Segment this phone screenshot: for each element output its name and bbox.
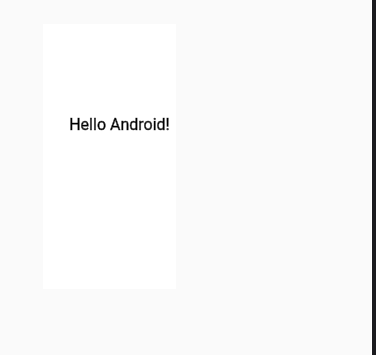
other: Hello Android! bbox=[43, 24, 176, 289]
